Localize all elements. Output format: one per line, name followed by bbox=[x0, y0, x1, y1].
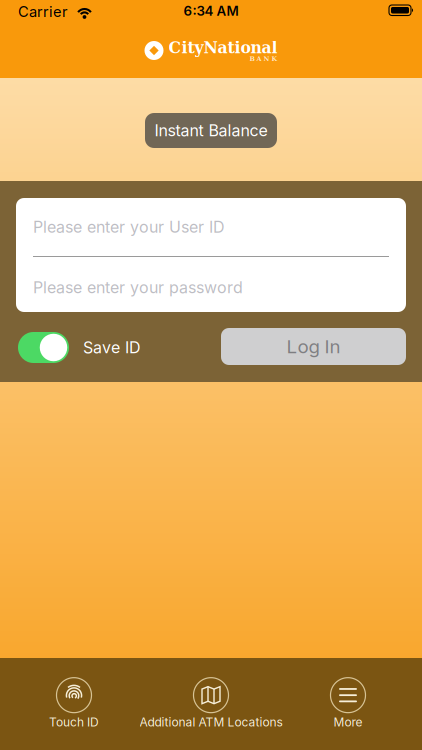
button[interactable]: Touch ID bbox=[49, 678, 99, 729]
staticText: More bbox=[333, 715, 362, 729]
button[interactable]: Additional ATM Locations bbox=[139, 678, 282, 729]
staticText: B A N K bbox=[249, 55, 277, 62]
staticText: Touch ID bbox=[49, 715, 99, 729]
staticText: Please enter your User ID bbox=[33, 218, 225, 236]
button[interactable]: More bbox=[330, 678, 365, 729]
button[interactable]: Instant Balance bbox=[145, 113, 277, 148]
staticText: Additional ATM Locations bbox=[139, 715, 282, 729]
button[interactable]: Save ID bbox=[18, 332, 69, 363]
staticText: CityNational bbox=[168, 38, 277, 57]
staticText: Please enter your password bbox=[33, 278, 243, 297]
button[interactable]: Log In bbox=[221, 328, 406, 365]
staticText: Log In bbox=[286, 335, 340, 357]
staticText: Instant Balance bbox=[154, 121, 267, 140]
staticText: 6:34 AM bbox=[183, 3, 238, 19]
staticText: Save ID bbox=[83, 338, 141, 357]
staticText: Carrier bbox=[18, 3, 68, 20]
